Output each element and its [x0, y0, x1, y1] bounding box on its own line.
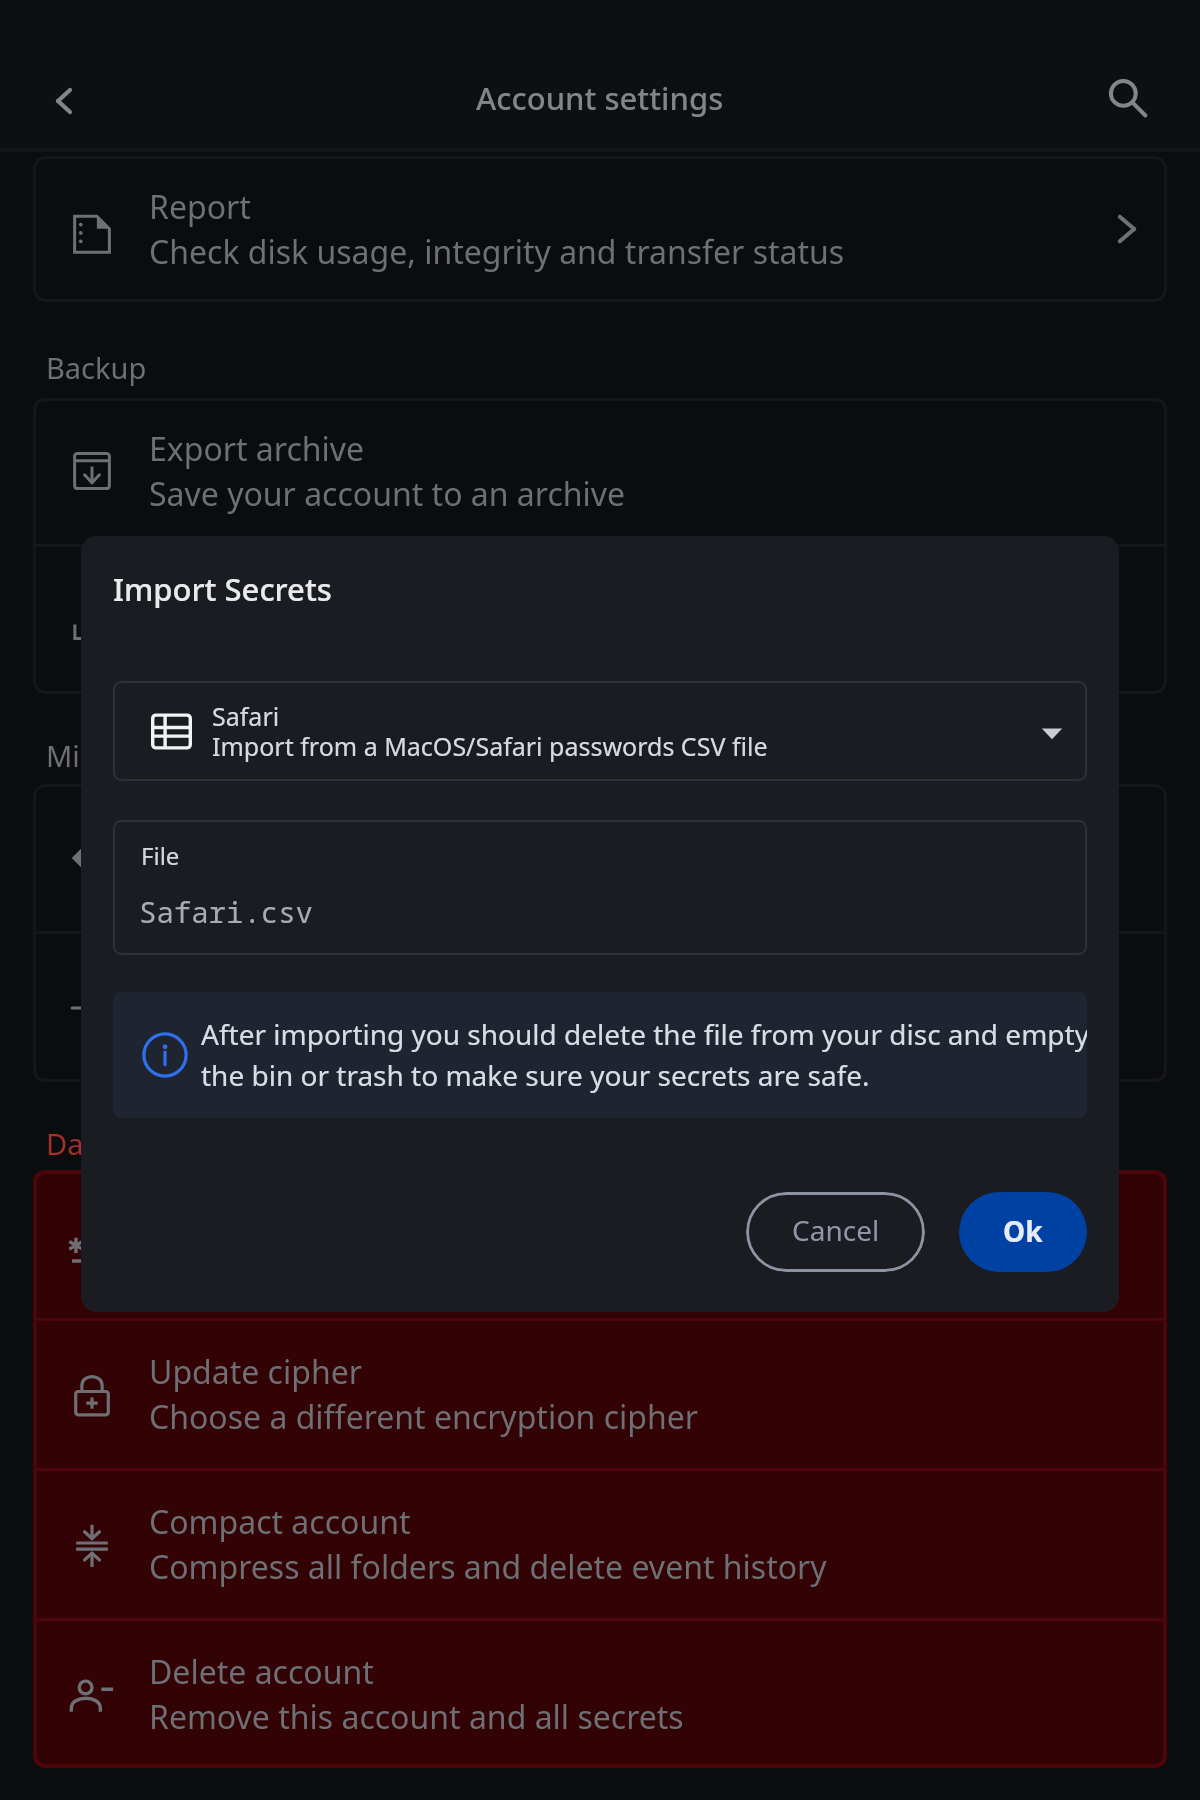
button[interactable]: Delete account: [33, 1621, 1167, 1768]
button[interactable]: Search: [1094, 65, 1160, 131]
staticText: After importing you should delete the fi…: [201, 1015, 1087, 1094]
button[interactable]: Move out: [33, 934, 1167, 1082]
staticText: File: [141, 839, 180, 872]
staticText: Choose a different encryption cipher: [149, 1395, 698, 1439]
staticText: Cancel: [792, 1211, 880, 1249]
staticText: Safari.csv: [139, 892, 314, 931]
staticText: Save your account to an archive: [149, 472, 626, 516]
staticText: Move secrets to another account: [149, 1009, 641, 1053]
button[interactable]: Report: [33, 156, 1167, 302]
button[interactable]: Safari Import from a MacOS/Safari passwo…: [113, 681, 1087, 781]
staticText: Ok: [1003, 1212, 1043, 1250]
staticText: Update cipher: [149, 1350, 362, 1394]
staticText: Check disk usage, integrity and transfer…: [149, 230, 845, 274]
button[interactable]: Compact account: [33, 1471, 1167, 1618]
staticText: Backup: [46, 348, 147, 387]
button[interactable]: Move in: [33, 784, 1167, 931]
staticText: Move secrets from another account: [149, 858, 683, 902]
staticText: Delete account: [149, 1650, 374, 1694]
staticText: Danger zone: [46, 1124, 221, 1163]
staticText: Safari Import from a MacOS/Safari passwo…: [212, 699, 768, 764]
button[interactable]: Export archive: [33, 398, 1167, 544]
staticText: Import secrets: [149, 576, 369, 620]
staticText: Move in: [149, 813, 268, 857]
button[interactable]: Cancel: [746, 1192, 925, 1272]
button[interactable]: Import secrets: [33, 547, 1167, 694]
staticText: Account settings: [476, 77, 724, 119]
staticText: Report: [149, 185, 251, 229]
staticText: Compress all folders and delete event hi…: [149, 1545, 827, 1589]
staticText: Import Secrets: [113, 568, 332, 610]
button[interactable]: Change secret: [33, 1170, 1167, 1318]
staticText: Move out: [149, 964, 291, 1008]
staticText: Export archive: [149, 427, 365, 471]
button[interactable]: Update cipher: [33, 1321, 1167, 1468]
button[interactable]: Ok: [959, 1192, 1087, 1272]
button[interactable]: File: [113, 820, 1087, 955]
staticText: Migration: [46, 736, 179, 775]
staticText: Remove this account and all secrets: [149, 1695, 684, 1739]
staticText: Compact account: [149, 1500, 411, 1544]
button[interactable]: Back: [19, 54, 107, 142]
